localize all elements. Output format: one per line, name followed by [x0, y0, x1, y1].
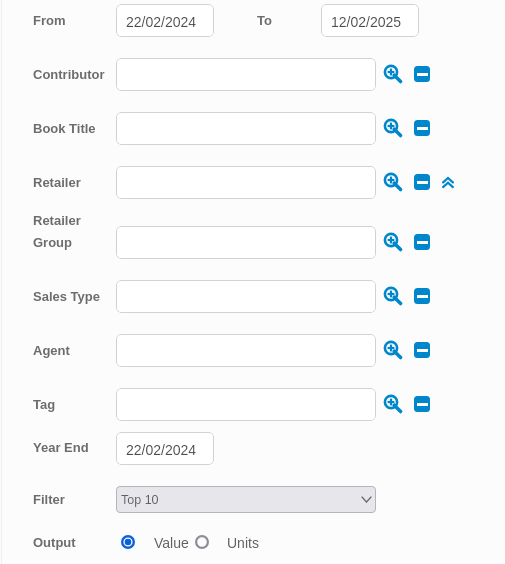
button[interactable]: 22/02/2024 — [116, 432, 214, 465]
staticText: Group — [33, 235, 72, 250]
staticText: From — [33, 13, 66, 28]
button[interactable] — [116, 58, 376, 91]
staticText: Book Title — [33, 121, 96, 136]
staticText: Contributor — [33, 67, 105, 82]
button[interactable]: Search — [379, 389, 405, 415]
staticText: Retailer — [33, 213, 81, 228]
button[interactable]: Search — [379, 227, 405, 253]
staticText: Filter — [33, 492, 65, 507]
button[interactable] — [116, 388, 376, 421]
button[interactable]: Remove — [409, 337, 435, 363]
staticText: Value — [154, 535, 189, 551]
button[interactable]: Search — [379, 59, 405, 85]
button[interactable]: 22/02/2024 — [116, 4, 214, 37]
staticText: 22/02/2024 — [126, 14, 197, 30]
button[interactable]: Remove — [409, 169, 435, 195]
staticText: Retailer — [33, 175, 81, 190]
button[interactable]: Search — [379, 113, 405, 139]
button[interactable] — [116, 166, 376, 199]
button[interactable]: Top 10 — [116, 486, 376, 513]
staticText: Output — [33, 535, 76, 550]
staticText: Top 10 — [121, 493, 159, 507]
button[interactable] — [116, 226, 376, 259]
button[interactable]: 12/02/2025 — [321, 4, 419, 37]
button[interactable]: Remove — [409, 115, 435, 141]
button[interactable]: Collapse — [436, 170, 460, 194]
button[interactable]: Search — [379, 167, 405, 193]
staticText: 12/02/2025 — [331, 14, 402, 30]
button[interactable]: Remove — [409, 229, 435, 255]
staticText: Sales Type — [33, 289, 100, 304]
button[interactable]: Value option — [117, 531, 139, 553]
button[interactable]: Search — [379, 335, 405, 361]
button[interactable]: Search — [379, 281, 405, 307]
button[interactable] — [116, 112, 376, 145]
staticText: To — [257, 13, 272, 28]
staticText: Agent — [33, 343, 70, 358]
button[interactable]: Units option — [191, 531, 213, 553]
button[interactable] — [116, 334, 376, 367]
staticText: Year End — [33, 440, 89, 455]
button[interactable]: Remove — [409, 61, 435, 87]
button[interactable]: Remove — [409, 283, 435, 309]
staticText: 22/02/2024 — [126, 442, 197, 458]
staticText: Tag — [33, 397, 56, 412]
button[interactable] — [116, 280, 376, 313]
staticText: Units — [227, 535, 259, 551]
button[interactable]: Remove — [409, 391, 435, 417]
